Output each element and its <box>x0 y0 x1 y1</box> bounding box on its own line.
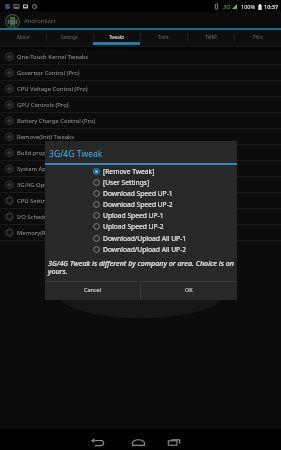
button[interactable]: Download Speed UP-2 <box>93 199 233 210</box>
staticText: Download Speed UP-1 <box>103 189 173 198</box>
button[interactable]: Home <box>125 433 151 450</box>
staticText: 3G <box>223 3 231 10</box>
button[interactable]: Settings <box>46 30 93 47</box>
button[interactable]: One-Touch Kernel Tweaks <box>0 49 281 64</box>
staticText: Tweaks <box>109 34 125 40</box>
button[interactable]: Battery Charge Control (Pro) <box>0 113 281 128</box>
button[interactable]: CPU Settings <box>0 193 281 208</box>
staticText: 100% <box>241 3 256 10</box>
button[interactable]: Build.prop Tweaks <box>0 145 281 160</box>
staticText: Tools <box>158 34 169 40</box>
button[interactable]: About <box>0 30 46 47</box>
staticText: 3G/4G Tweak is different by company or a… <box>48 258 236 276</box>
staticText: CPU Settings <box>17 197 53 205</box>
button[interactable]: 3G/4G Optimizer <box>0 177 281 192</box>
staticText: CPU Voltage Control (Pro) <box>17 85 88 93</box>
staticText: 3G/4G Tweak <box>49 148 103 160</box>
staticText: OK <box>185 286 193 293</box>
button[interactable]: TWRP <box>187 30 234 47</box>
button[interactable]: Cancel <box>45 282 140 300</box>
staticText: I/O Scheduler <box>17 213 55 221</box>
staticText: 3G/4G Optimizer <box>17 181 64 189</box>
staticText: [User Settings] <box>103 178 150 187</box>
button[interactable]: CPU Voltage Control (Pro) <box>0 81 281 96</box>
staticText: GPU Controls (Pro) <box>17 101 69 109</box>
button[interactable]: [Remove Tweak] <box>93 166 233 177</box>
staticText: One-Touch Kernel Tweaks <box>17 53 89 61</box>
button[interactable]: Remove(Init) Tweaks <box>0 129 281 144</box>
staticText: [Remove Tweak] <box>103 167 155 176</box>
button[interactable]: Download Speed UP-1 <box>93 188 233 199</box>
staticText: TWRP <box>205 34 217 40</box>
button[interactable]: Upload Speed UP-1 <box>93 210 233 221</box>
button[interactable]: Philz <box>234 30 281 47</box>
staticText: About <box>17 34 30 40</box>
button[interactable]: I/O Scheduler <box>0 209 281 224</box>
staticText: Governor Control (Pro) <box>17 69 80 77</box>
button[interactable]: [User Settings] <box>93 177 233 188</box>
staticText: Download Speed UP-2 <box>103 200 173 209</box>
staticText: Memory(RAM) Tweaks <box>17 229 79 237</box>
staticText: Download/Upload All UP-1 <box>103 234 187 243</box>
button[interactable]: Andromizer <box>0 12 281 30</box>
button[interactable]: OK <box>141 282 237 300</box>
button[interactable]: System Apps Remover <box>0 161 281 176</box>
staticText: Settings <box>61 34 78 40</box>
button[interactable]: Download/Upload All UP-1 <box>93 233 233 244</box>
staticText: System Apps Remover <box>17 165 79 173</box>
staticText: Cancel <box>84 286 102 293</box>
staticText: Download/Upload All UP-2 <box>103 245 187 254</box>
staticText: Battery Charge Control (Pro) <box>17 117 96 125</box>
staticText: Upload Speed UP-1 <box>103 211 164 220</box>
button[interactable]: Tools <box>140 30 187 47</box>
staticText: Philz <box>253 34 263 40</box>
staticText: Andromizer <box>24 17 56 25</box>
staticText: 10:37 <box>264 3 279 10</box>
staticText: Upload Speed UP-2 <box>103 222 164 231</box>
button[interactable]: Governor Control (Pro) <box>0 65 281 80</box>
staticText: Build.prop Tweaks <box>17 149 68 157</box>
button[interactable]: Memory(RAM) Tweaks <box>0 225 281 240</box>
button[interactable]: Tweaks <box>93 30 140 47</box>
button[interactable]: GPU Controls (Pro) <box>0 97 281 112</box>
button[interactable]: Back <box>84 433 110 450</box>
staticText: Remove(Init) Tweaks <box>17 133 74 141</box>
button[interactable]: Recent apps <box>161 433 187 450</box>
button[interactable]: Download/Upload All UP-2 <box>93 244 233 255</box>
button[interactable]: Upload Speed UP-2 <box>93 221 233 232</box>
